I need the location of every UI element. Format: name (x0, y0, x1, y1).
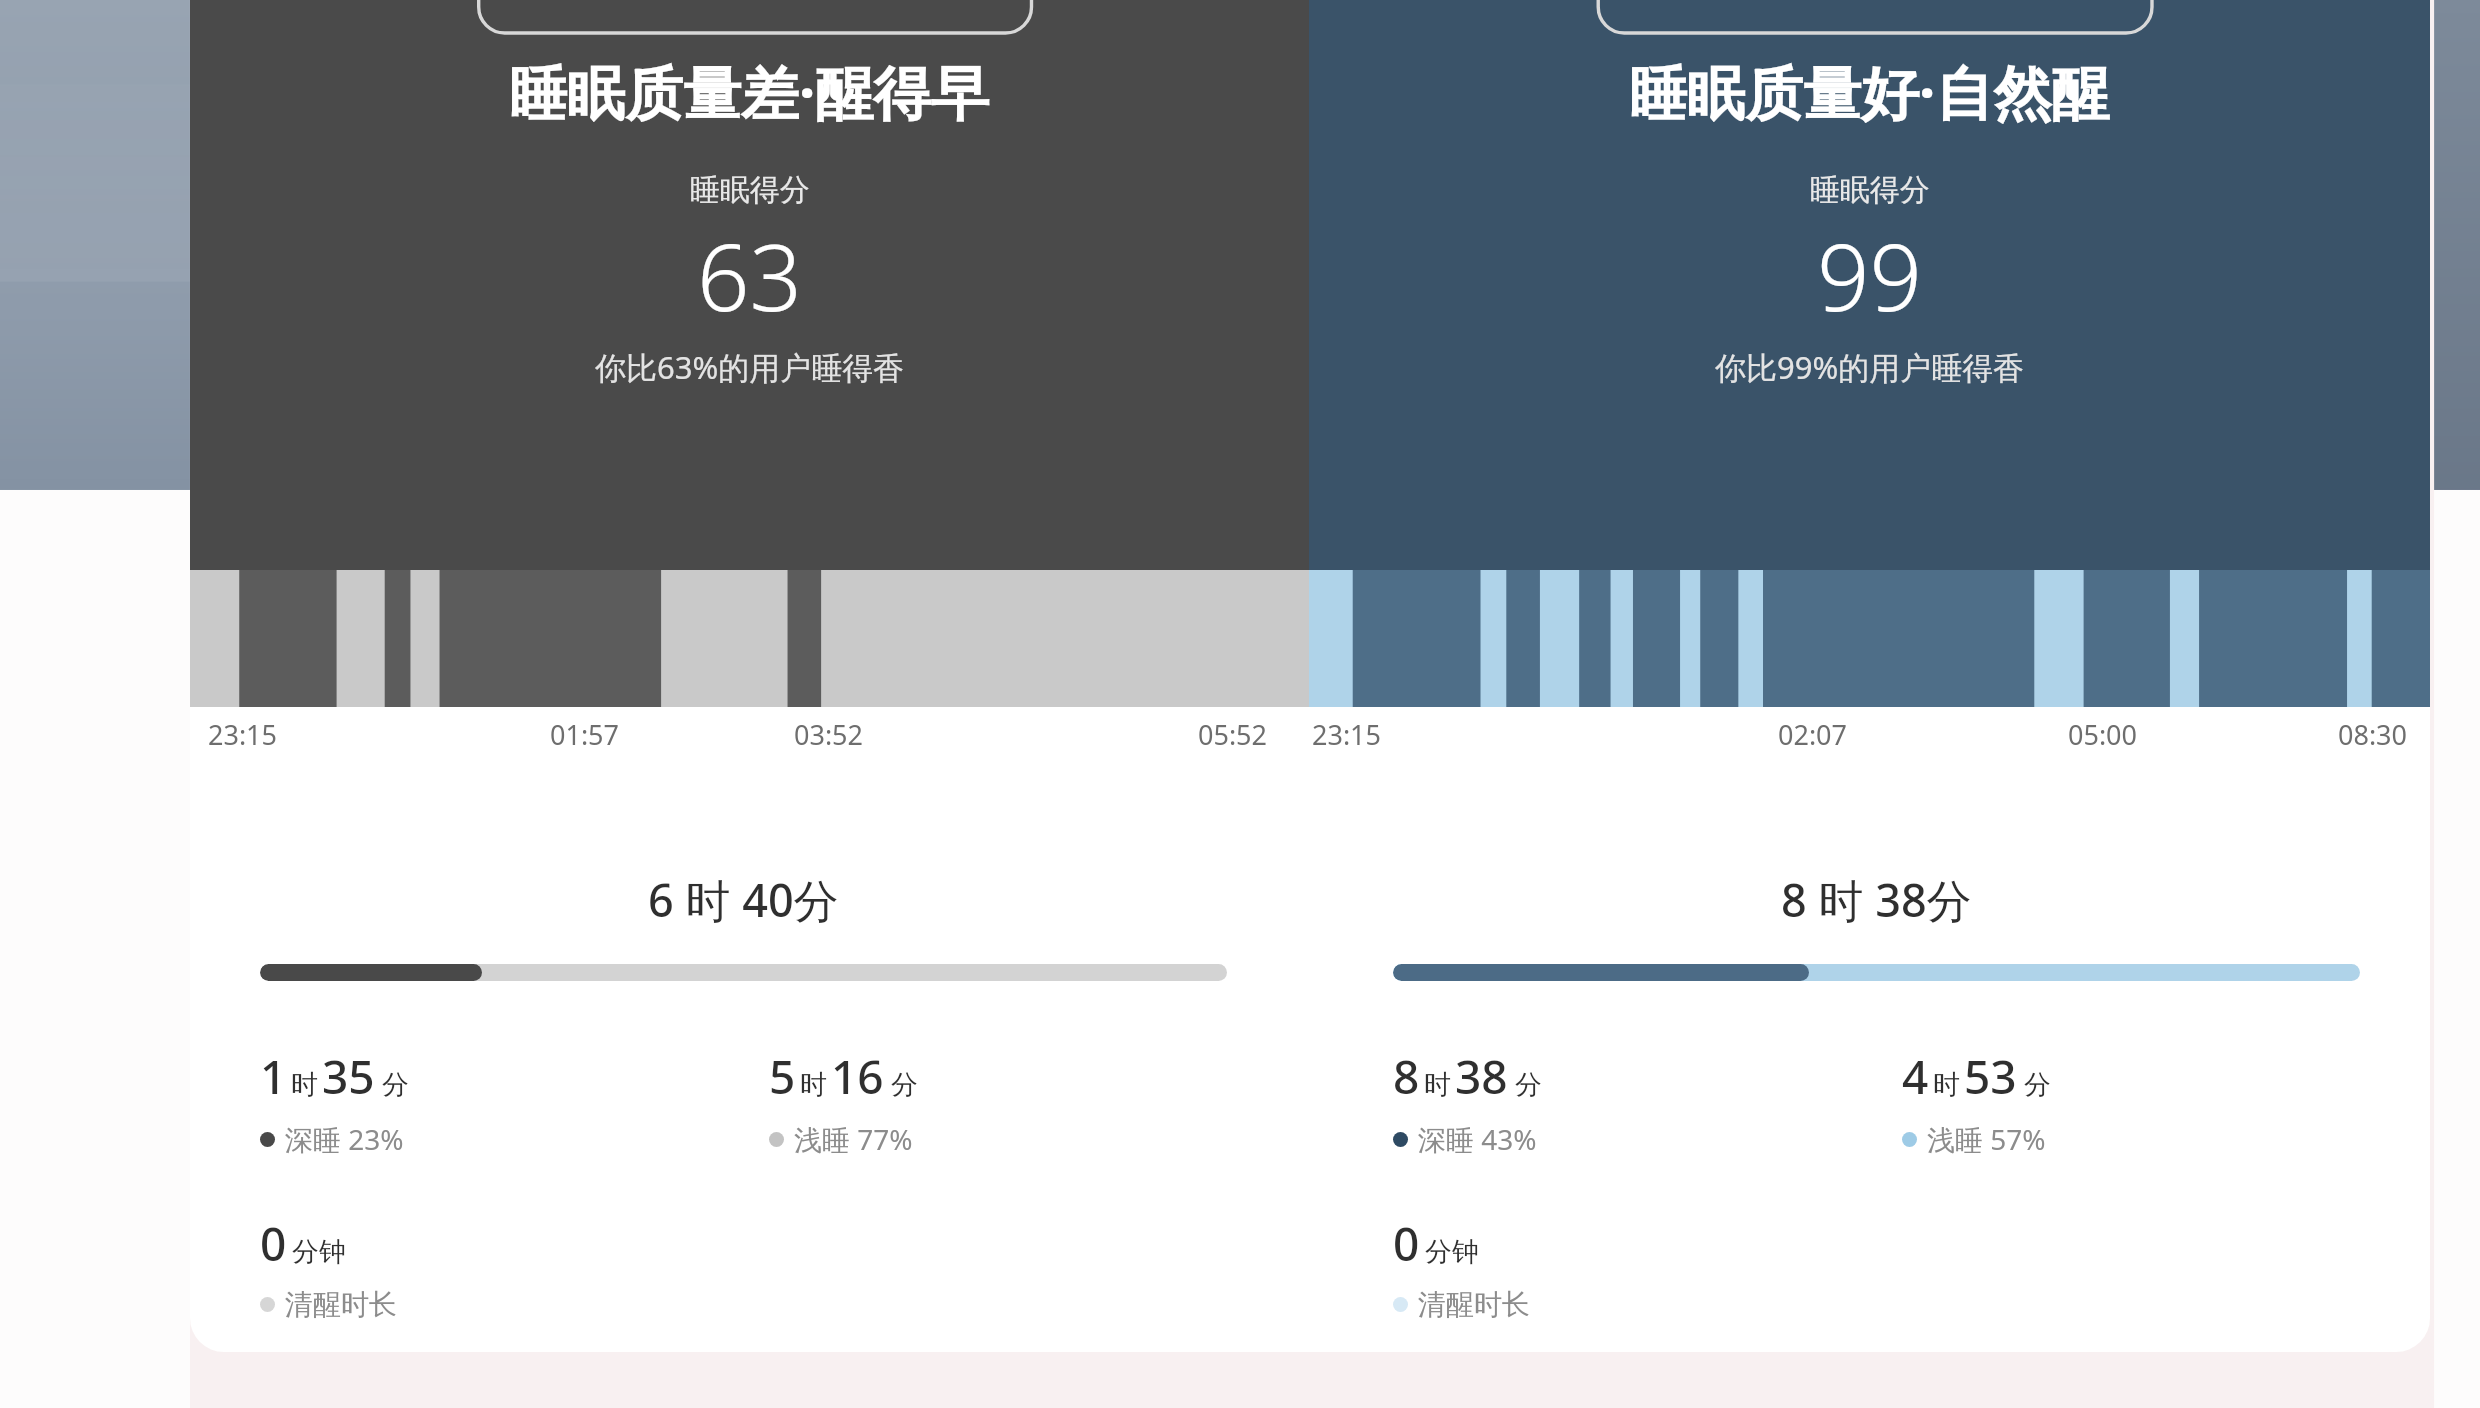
staticText: 清醒时长 (285, 1287, 397, 1322)
staticText: 分 (891, 1068, 918, 1102)
staticText: 8 (1393, 1045, 1420, 1108)
staticText: 23:15 (208, 716, 278, 753)
staticText: 分钟 (1425, 1235, 1479, 1269)
staticText: 5 (769, 1045, 796, 1108)
staticText: 分 (1515, 1068, 1542, 1102)
staticText: 浅睡 77% (794, 1120, 913, 1158)
staticText: 睡眠质量差·醒得早 (509, 52, 990, 131)
staticText: 时 (1424, 1068, 1451, 1102)
staticText: 深睡 43% (1418, 1120, 1537, 1158)
staticText: 53 (1964, 1045, 2017, 1108)
staticText: 你比99%的用户睡得香 (1715, 346, 2025, 388)
staticText: 时 (800, 1068, 827, 1102)
staticText: 01:57 (550, 716, 620, 753)
staticText: 99 (1817, 213, 1923, 338)
staticText: 睡眠得分 (690, 171, 810, 209)
staticText: 1 (260, 1045, 287, 1108)
staticText: 时 (1933, 1068, 1960, 1102)
staticText: 深睡 23% (285, 1120, 404, 1158)
staticText: 03:52 (794, 716, 864, 753)
button[interactable]: 睡眠质量差·醒得早 (190, 0, 1309, 570)
staticText: 分 (382, 1068, 409, 1102)
staticText: 16 (831, 1045, 884, 1108)
staticText: 睡眠质量好·自然醒 (1629, 52, 2110, 131)
staticText: 05:52 (1198, 716, 1268, 753)
staticText: 38 (1455, 1045, 1508, 1108)
staticText: 分 (2024, 1068, 2051, 1102)
staticText: 8 时 38分 (1781, 869, 1972, 930)
staticText: 睡眠得分 (1810, 171, 1930, 209)
staticText: 分钟 (292, 1235, 346, 1269)
staticText: 你比63%的用户睡得香 (595, 346, 905, 388)
staticText: 0 (260, 1212, 287, 1275)
staticText: 23:15 (1312, 716, 1382, 753)
staticText: 清醒时长 (1418, 1287, 1530, 1322)
staticText: 35 (322, 1045, 375, 1108)
staticText: 6 时 40分 (648, 869, 839, 930)
staticText: 浅睡 57% (1927, 1120, 2046, 1158)
staticText: 0 (1393, 1212, 1420, 1275)
staticText: 时 (291, 1068, 318, 1102)
staticText: 63 (697, 213, 803, 338)
staticText: 4 (1902, 1045, 1929, 1108)
button[interactable]: 6 时 40分 (208, 805, 1279, 1333)
button[interactable]: 8 时 38分 (1341, 805, 2412, 1333)
staticText: 08:30 (2338, 716, 2408, 753)
staticText: 02:07 (1778, 716, 1848, 753)
button[interactable]: 睡眠质量好·自然醒 (1309, 0, 2430, 570)
staticText: 05:00 (2068, 716, 2138, 753)
